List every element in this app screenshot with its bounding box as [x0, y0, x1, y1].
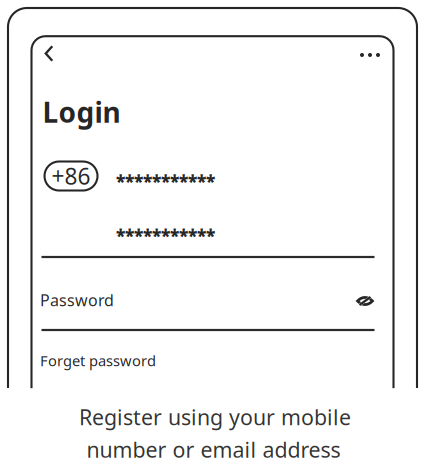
staticText: number or email address [86, 435, 340, 464]
staticText: *********** [116, 170, 215, 193]
button[interactable]: Verification code [50, 219, 280, 253]
button[interactable]: Forget password [40, 347, 156, 373]
button[interactable]: +86 [44, 161, 97, 190]
button[interactable]: Back [32, 36, 66, 70]
button[interactable]: More options [350, 38, 390, 72]
button[interactable]: Password [40, 283, 300, 317]
staticText: *********** [116, 224, 215, 247]
button[interactable]: Show password [348, 286, 382, 316]
button[interactable]: Phone number [50, 165, 280, 199]
staticText: +86 [51, 161, 90, 191]
staticText: Forget password [40, 351, 156, 370]
staticText: Password [40, 289, 114, 311]
staticText: Login [42, 93, 120, 131]
staticText: Register using your mobile [79, 403, 351, 431]
